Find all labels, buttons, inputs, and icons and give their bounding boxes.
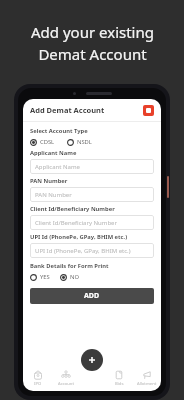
staticText: Demat Account — [38, 44, 147, 64]
staticText: Add your existing — [31, 22, 154, 42]
staticText: UPI Id (PhonePe, GPay, BHIM etc.) — [35, 247, 131, 255]
button[interactable]: ADD — [30, 288, 154, 304]
staticText: NO — [70, 273, 79, 281]
button[interactable]: Bids — [105, 365, 133, 391]
staticText: CDSL — [40, 138, 55, 146]
button[interactable]: NO — [60, 273, 79, 281]
staticText: IPO — [34, 381, 42, 387]
staticText: ADD — [84, 291, 100, 301]
button[interactable]: PAN Number — [30, 187, 154, 202]
staticText: NSDL — [77, 138, 92, 146]
button[interactable]: CDSL — [30, 138, 55, 146]
button[interactable]: NSDL — [67, 138, 92, 146]
button[interactable]: Account — [52, 365, 80, 391]
staticText: Applicant Name — [35, 163, 80, 171]
staticText: YES — [40, 273, 50, 281]
staticText: Add Demat Account — [30, 105, 105, 115]
button[interactable]: Add — [81, 349, 103, 371]
staticText: Allotment — [137, 381, 157, 387]
button[interactable]: Applicant Name — [30, 159, 154, 174]
staticText: Client Id/Beneficiary Number — [35, 219, 117, 227]
staticText: Bank Details for Form Print — [30, 262, 109, 270]
button[interactable]: Allotment — [133, 365, 161, 391]
button[interactable]: UPI Id (PhonePe, GPay, BHIM etc.) — [30, 243, 154, 258]
staticText: Applicant Name — [30, 149, 77, 157]
staticText: PAN Number — [30, 177, 68, 185]
staticText: UPI Id (PhonePe, GPay, BHIM etc.) — [30, 233, 128, 241]
button[interactable]: IPO — [23, 365, 52, 391]
staticText: PAN Number — [35, 191, 72, 199]
button[interactable]: YES — [30, 273, 50, 281]
staticText: Client Id/Beneficiary Number — [30, 205, 115, 213]
staticText: Account — [58, 381, 74, 387]
staticText: Bids — [115, 381, 124, 387]
button[interactable]: Client Id/Beneficiary Number — [30, 215, 154, 230]
staticText: Select Account Type — [30, 127, 88, 135]
button[interactable]: Export PDF — [143, 105, 154, 116]
